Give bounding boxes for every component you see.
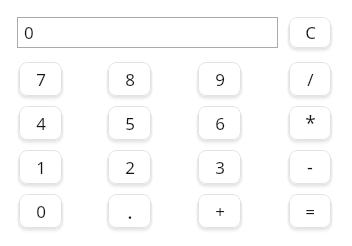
button[interactable]: 7 [19,62,62,96]
button[interactable]: 0 [17,17,278,48]
button[interactable]: 0 [19,194,62,228]
button[interactable]: + [198,194,241,228]
staticText: 7 [36,68,46,91]
button[interactable]: 5 [108,106,151,140]
button[interactable]: 9 [198,62,241,96]
staticText: 0 [36,200,46,223]
button[interactable]: 4 [19,106,62,140]
staticText: 5 [125,112,135,135]
staticText: . [127,198,133,225]
staticText: 4 [36,112,46,135]
staticText: = [305,200,315,223]
staticText: 0 [24,21,34,44]
button[interactable]: - [289,150,331,184]
button[interactable]: C [289,17,331,48]
button[interactable]: 2 [108,150,151,184]
staticText: 9 [215,68,225,91]
staticText: / [307,68,314,91]
staticText: C [305,21,316,44]
button[interactable]: 1 [19,150,62,184]
staticText: 8 [125,68,135,91]
button[interactable]: 3 [198,150,241,184]
staticText: - [307,155,313,180]
staticText: 3 [215,156,225,179]
staticText: 6 [215,112,225,135]
button[interactable]: = [289,194,331,228]
staticText: + [215,200,225,223]
button[interactable]: 6 [198,106,241,140]
button[interactable]: * [289,106,331,140]
staticText: * [305,110,316,136]
button[interactable]: . [108,194,151,228]
staticText: 2 [125,156,135,179]
button[interactable]: / [289,62,331,96]
button[interactable]: 8 [108,62,151,96]
staticText: 1 [36,156,46,179]
